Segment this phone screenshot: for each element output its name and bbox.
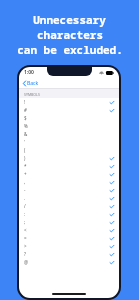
- staticText: Back: [27, 80, 39, 87]
- button[interactable]: -: [19, 186, 119, 194]
- button[interactable]: &: [19, 130, 119, 138]
- button[interactable]: >: [19, 242, 119, 250]
- staticText: 1:00: [24, 69, 34, 76]
- staticText: +: [24, 171, 27, 177]
- staticText: >: [24, 243, 27, 249]
- button[interactable]: <: [19, 226, 119, 234]
- button[interactable]: +: [19, 170, 119, 178]
- button[interactable]: =: [19, 234, 119, 242]
- button[interactable]: /: [19, 202, 119, 210]
- staticText: Unnecessary: [33, 12, 106, 27]
- button[interactable]: #: [19, 106, 119, 114]
- button[interactable]: .: [19, 194, 119, 202]
- staticText: ': [24, 139, 26, 145]
- staticText: @: [24, 259, 29, 265]
- staticText: %: [24, 123, 28, 129]
- staticText: /: [24, 203, 26, 209]
- button[interactable]: (: [19, 146, 119, 154]
- staticText: !: [24, 99, 26, 105]
- button[interactable]: !: [19, 98, 119, 106]
- button[interactable]: ;: [19, 218, 119, 226]
- staticText: ;: [24, 219, 26, 225]
- button[interactable]: ): [19, 154, 119, 162]
- staticText: ?: [24, 251, 26, 257]
- staticText: :: [24, 211, 26, 217]
- button[interactable]: @: [19, 258, 119, 266]
- staticText: &: [24, 131, 28, 137]
- staticText: =: [24, 235, 27, 241]
- button[interactable]: Back: [19, 78, 43, 89]
- staticText: characters: [37, 27, 103, 42]
- button[interactable]: :: [19, 210, 119, 218]
- staticText: -: [24, 187, 26, 193]
- staticText: <: [24, 227, 27, 233]
- staticText: .: [24, 195, 26, 201]
- staticText: ,: [24, 179, 26, 185]
- staticText: *: [24, 163, 27, 169]
- staticText: can be excluded.: [17, 42, 123, 57]
- button[interactable]: ,: [19, 178, 119, 186]
- button[interactable]: %: [19, 122, 119, 130]
- staticText: ): [24, 155, 26, 161]
- button[interactable]: *: [19, 162, 119, 170]
- staticText: $: [24, 115, 27, 121]
- staticText: #: [24, 107, 27, 113]
- button[interactable]: $: [19, 114, 119, 122]
- staticText: (: [24, 147, 26, 153]
- button[interactable]: ?: [19, 250, 119, 258]
- staticText: SYMBOLS: [24, 92, 40, 97]
